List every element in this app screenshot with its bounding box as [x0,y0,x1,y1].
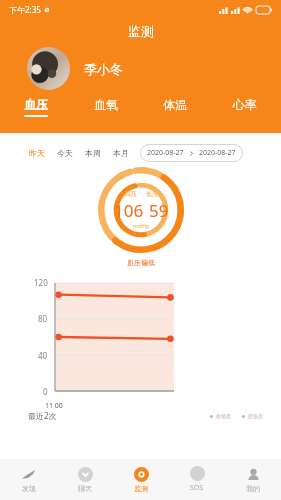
button[interactable]: 昨天 [27,146,47,160]
button[interactable]: SOS [169,459,225,500]
staticText: 血氧 [94,97,118,112]
staticText: 舒张压 [248,413,263,419]
staticText: 我的 [246,484,260,493]
button[interactable]: 2020-08-27 [140,144,243,162]
staticText: SOS [190,483,204,493]
button[interactable]: 体温 [153,95,197,119]
staticText: 季小冬 [84,61,123,77]
staticText: 血压 [24,97,48,112]
staticText: 11 00 [45,401,63,411]
button[interactable]: 心率 [223,95,267,119]
staticText: 发现 [22,484,36,493]
staticText: 监测 [128,23,154,39]
staticText: 监测 [134,484,148,493]
staticText: 120 [34,277,48,288]
staticText: 0 [43,386,48,397]
staticText: 高压 [125,190,137,198]
staticText: 低压 [146,190,158,198]
staticText: 40 [38,350,48,361]
button[interactable]: 聊天 [57,459,113,500]
button[interactable]: 血氧 [84,95,128,119]
staticText: 80 [38,313,48,324]
staticText: 聊天 [78,484,92,493]
staticText: mmHg [133,223,150,230]
staticText: 下午2:35 [9,4,41,15]
staticText: 体温 [163,97,187,112]
button[interactable]: 发现 [0,459,57,500]
staticText: 血压偏低 [127,258,155,267]
button[interactable]: 监测 [113,459,169,500]
staticText: 106 [114,199,144,222]
button[interactable]: 血压 [14,95,58,119]
staticText: 2020-08-27 [199,148,236,158]
staticText: 心率 [233,97,257,112]
button[interactable]: 本周 [83,146,103,160]
staticText: 收缩压 [216,413,231,419]
button[interactable]: 本月 [111,146,131,160]
staticText: 2020-08-27 [147,148,184,158]
staticText: 最近2次 [28,410,57,421]
button[interactable]: 我的 [225,459,281,500]
button[interactable]: 今天 [55,146,75,160]
staticText: 59 [149,199,169,222]
